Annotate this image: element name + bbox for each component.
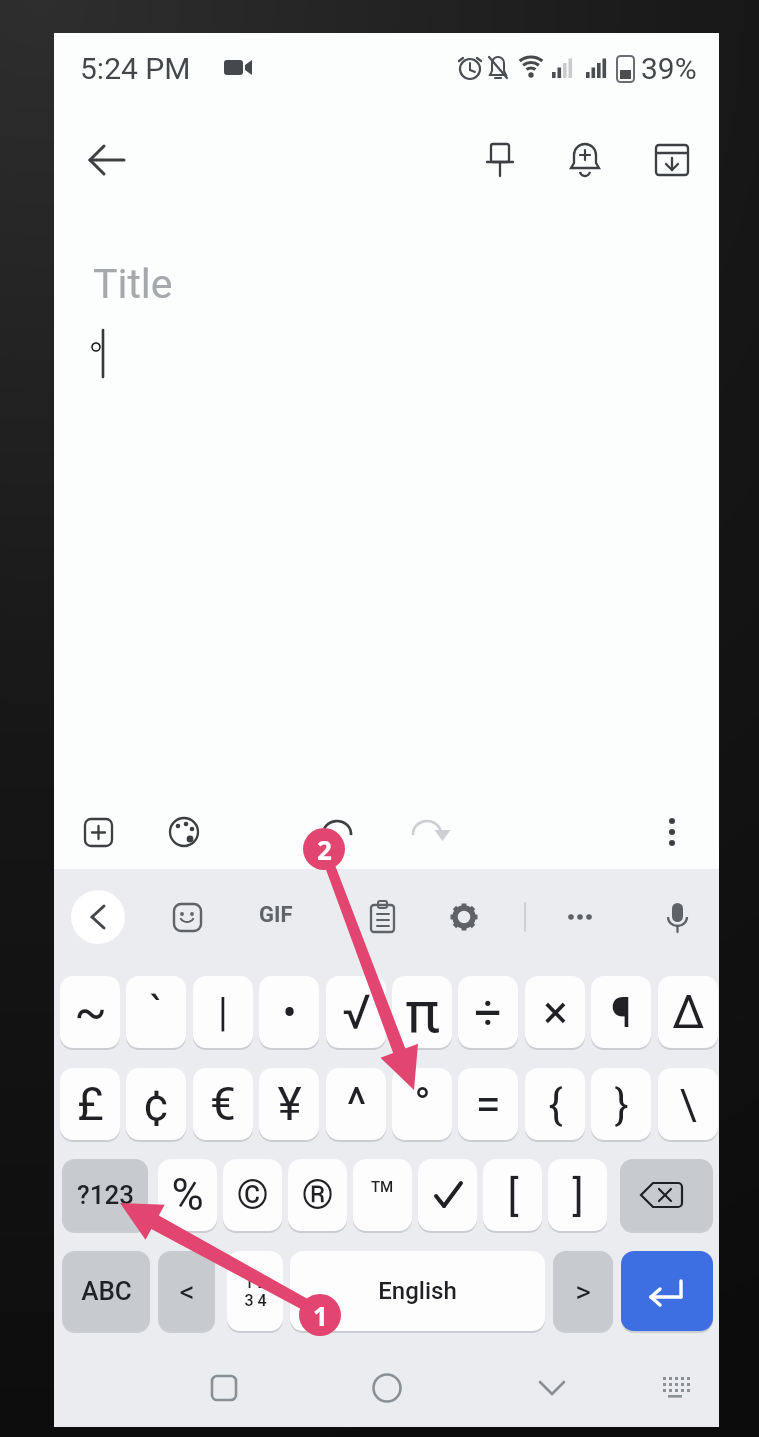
- staticText: ©: [236, 1171, 269, 1219]
- staticText: GIF: [259, 902, 293, 928]
- staticText: €: [210, 1077, 236, 1131]
- button[interactable]: }: [591, 1068, 651, 1140]
- staticText: %: [171, 1169, 204, 1221]
- staticText: `: [149, 986, 163, 1038]
- button[interactable]: [621, 1251, 713, 1331]
- button[interactable]: ?123: [62, 1159, 148, 1231]
- staticText: ABC: [81, 1276, 132, 1306]
- staticText: •: [282, 988, 297, 1037]
- staticText: \: [679, 1080, 697, 1129]
- staticText: {: [548, 1080, 563, 1129]
- button[interactable]: [363, 1364, 411, 1412]
- staticText: ^: [346, 1076, 367, 1132]
- staticText: >: [575, 1274, 591, 1309]
- button[interactable]: [648, 809, 696, 857]
- button[interactable]: ©: [223, 1159, 282, 1231]
- button[interactable]: ×: [525, 976, 585, 1048]
- button[interactable]: ¢: [126, 1068, 186, 1140]
- button[interactable]: °: [392, 1068, 452, 1140]
- button[interactable]: =: [458, 1068, 518, 1140]
- button[interactable]: %: [158, 1159, 217, 1231]
- button[interactable]: |: [193, 976, 253, 1048]
- button[interactable]: ^: [326, 1068, 386, 1140]
- button[interactable]: ÷: [458, 976, 518, 1048]
- button[interactable]: >: [553, 1251, 613, 1331]
- staticText: ¢: [143, 1077, 169, 1131]
- staticText: 2: [317, 832, 332, 867]
- button[interactable]: ]: [548, 1159, 607, 1231]
- button[interactable]: [82, 136, 130, 184]
- button[interactable]: [476, 136, 524, 184]
- staticText: ]: [572, 1171, 584, 1220]
- button[interactable]: ABC: [62, 1251, 150, 1331]
- staticText: ÷: [474, 984, 502, 1040]
- staticText: [: [507, 1171, 519, 1220]
- staticText: 39%: [641, 51, 697, 86]
- staticText: 5:24 PM: [80, 51, 191, 86]
- button[interactable]: \: [658, 1068, 718, 1140]
- button[interactable]: [440, 893, 488, 941]
- button[interactable]: [160, 809, 208, 857]
- staticText: £: [77, 1077, 104, 1131]
- staticText: }: [614, 1080, 629, 1129]
- button[interactable]: [561, 136, 609, 184]
- staticText: ~: [74, 984, 107, 1040]
- button[interactable]: €: [193, 1068, 253, 1140]
- staticText: ®: [301, 1171, 334, 1219]
- button[interactable]: [651, 1364, 699, 1412]
- button[interactable]: [653, 893, 701, 941]
- button[interactable]: ¶: [591, 976, 651, 1048]
- button[interactable]: [353, 1159, 412, 1231]
- button[interactable]: π: [392, 976, 452, 1048]
- staticText: 1: [313, 1298, 328, 1333]
- button[interactable]: ~: [60, 976, 120, 1048]
- button[interactable]: [163, 893, 211, 941]
- staticText: √: [342, 984, 371, 1040]
- button[interactable]: [312, 809, 360, 857]
- staticText: English: [378, 1277, 457, 1305]
- button[interactable]: `: [126, 976, 186, 1048]
- staticText: =: [475, 1077, 501, 1131]
- staticText: TM: [371, 1178, 394, 1196]
- staticText: ¶: [611, 988, 632, 1037]
- button[interactable]: Δ: [658, 976, 718, 1048]
- button[interactable]: [528, 1364, 576, 1412]
- button[interactable]: [358, 893, 406, 941]
- staticText: ?123: [77, 1180, 134, 1210]
- button[interactable]: £: [60, 1068, 120, 1140]
- staticText: Δ: [672, 985, 705, 1039]
- button[interactable]: ®: [288, 1159, 347, 1231]
- button[interactable]: [418, 1159, 477, 1231]
- button[interactable]: English: [290, 1251, 545, 1331]
- staticText: <: [179, 1274, 195, 1309]
- button[interactable]: 1 2 3 4: [227, 1251, 283, 1331]
- staticText: °: [414, 1078, 431, 1130]
- button[interactable]: {: [525, 1068, 585, 1140]
- button[interactable]: √: [326, 976, 386, 1048]
- button[interactable]: [200, 1364, 248, 1412]
- button[interactable]: ¥: [259, 1068, 319, 1140]
- staticText: ×: [543, 985, 568, 1039]
- staticText: |: [218, 989, 228, 1036]
- button[interactable]: [648, 136, 696, 184]
- button[interactable]: [71, 890, 125, 944]
- staticText: 1 2 3 4: [244, 1273, 267, 1310]
- button[interactable]: [556, 893, 604, 941]
- button[interactable]: [74, 809, 122, 857]
- staticText: ¥: [277, 1077, 302, 1131]
- button[interactable]: [402, 809, 450, 857]
- button[interactable]: <: [158, 1251, 215, 1331]
- button[interactable]: [: [483, 1159, 542, 1231]
- staticText: π: [405, 978, 440, 1046]
- button[interactable]: [620, 1159, 713, 1231]
- staticText: Title: [93, 260, 173, 308]
- button[interactable]: [258, 893, 306, 941]
- button[interactable]: •: [259, 976, 319, 1048]
